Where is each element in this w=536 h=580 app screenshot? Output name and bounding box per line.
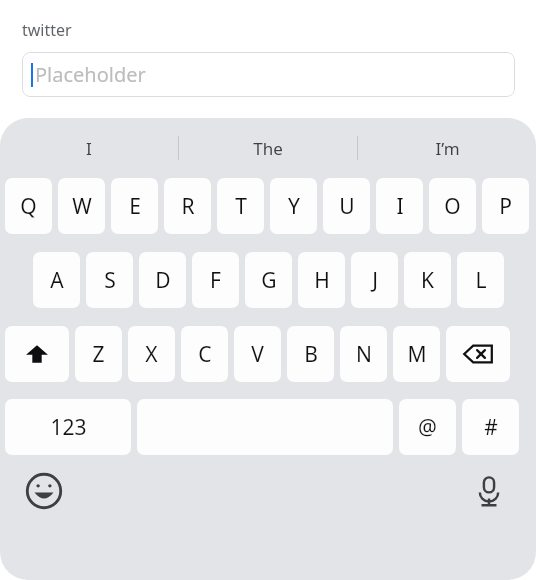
staticText: # [484,413,498,442]
staticText: O [444,192,461,221]
button[interactable]: I [0,118,178,178]
staticText: G [261,266,277,295]
button[interactable]: Shift [5,326,69,382]
staticText: M [407,340,427,369]
staticText: P [499,192,512,221]
button[interactable]: R [164,178,211,234]
staticText: H [314,266,330,295]
button[interactable]: # [462,399,519,455]
button[interactable]: D [139,252,186,308]
button[interactable]: A [33,252,80,308]
button[interactable]: Emoji [22,469,66,513]
button[interactable]: U [323,178,370,234]
button[interactable]: L [457,252,504,308]
staticText: B [304,340,318,369]
button[interactable]: T [217,178,264,234]
button[interactable]: S [86,252,133,308]
staticText: @ [418,413,437,442]
staticText: Q [20,192,37,221]
button[interactable]: W [58,178,105,234]
staticText: F [210,266,221,295]
button[interactable]: The [179,118,357,178]
button[interactable]: E [111,178,158,234]
button[interactable]: X [128,326,175,382]
button[interactable]: 123 [5,399,131,455]
staticText: E [129,192,141,221]
button[interactable]: C [181,326,228,382]
staticText: I’m [435,137,460,160]
button[interactable]: H [298,252,345,308]
staticText: I [86,137,92,160]
staticText: N [356,340,372,369]
staticText: A [50,266,64,295]
button[interactable]: N [340,326,387,382]
button[interactable]: Backspace [446,326,510,382]
staticText: U [339,192,355,221]
staticText: 123 [50,413,87,442]
staticText: J [372,266,378,295]
button[interactable]: Q [5,178,52,234]
button[interactable]: Y [270,178,317,234]
staticText: Z [92,340,105,369]
staticText: The [253,137,283,160]
button[interactable]: I’m [358,118,536,178]
button[interactable]: B [287,326,334,382]
staticText: R [181,192,195,221]
button[interactable]: Voice input [467,469,511,513]
button[interactable]: O [429,178,476,234]
button[interactable]: M [393,326,440,382]
button[interactable]: Z [75,326,122,382]
staticText: Y [288,192,300,221]
staticText: S [104,266,116,295]
staticText: T [235,192,247,221]
staticText: D [155,266,171,295]
staticText: V [251,340,264,369]
staticText: twitter [22,19,72,41]
button[interactable]: P [482,178,529,234]
button[interactable]: I [376,178,423,234]
staticText: Placeholder [35,61,146,88]
button[interactable]: @ [399,399,456,455]
staticText: X [145,340,158,369]
button[interactable]: J [351,252,398,308]
button[interactable]: F [192,252,239,308]
staticText: I [396,192,404,221]
staticText: K [421,266,434,295]
button[interactable]: G [245,252,292,308]
staticText: L [475,266,487,295]
button[interactable]: V [234,326,281,382]
staticText: C [198,340,212,369]
button[interactable]: Placeholder [22,52,515,97]
staticText: W [72,192,92,221]
button[interactable]: K [404,252,451,308]
